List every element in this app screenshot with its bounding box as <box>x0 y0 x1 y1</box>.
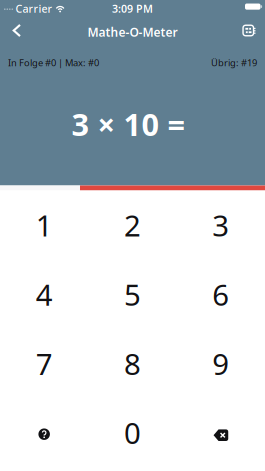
staticText: Übrig: #19 <box>211 56 257 69</box>
staticText: 3 × 10 = <box>71 104 185 144</box>
button[interactable]: 4 <box>0 260 88 329</box>
button[interactable]: 8 <box>88 329 177 398</box>
staticText: 7 <box>36 344 53 383</box>
button[interactable]: 1 <box>0 190 88 260</box>
button[interactable]: Times tables <box>242 17 265 43</box>
button[interactable]: 0 <box>88 398 177 467</box>
staticText: 1 <box>36 206 53 245</box>
staticText: 9 <box>212 344 229 383</box>
button[interactable]: Help <box>0 398 88 467</box>
staticText: 2 <box>124 206 141 245</box>
button[interactable]: 5 <box>88 260 177 329</box>
staticText: 3:09 PM <box>112 1 153 16</box>
staticText: 6 <box>212 275 229 314</box>
staticText: In Folge #0 | Max: #0 <box>8 56 99 69</box>
staticText: Carrier <box>16 1 53 16</box>
button[interactable]: Back <box>0 18 21 43</box>
staticText: 5 <box>124 275 141 314</box>
button[interactable]: Delete <box>177 398 265 467</box>
button[interactable]: 2 <box>88 190 177 260</box>
button[interactable]: 3 <box>177 190 265 260</box>
staticText: 0 <box>124 413 141 452</box>
staticText: Mathe-O-Meter <box>87 24 177 40</box>
staticText: 8 <box>124 344 141 383</box>
button[interactable]: 7 <box>0 329 88 398</box>
staticText: 3 <box>212 206 229 245</box>
button[interactable]: 6 <box>177 260 265 329</box>
staticText: 4 <box>36 275 53 314</box>
button[interactable]: 9 <box>177 329 265 398</box>
